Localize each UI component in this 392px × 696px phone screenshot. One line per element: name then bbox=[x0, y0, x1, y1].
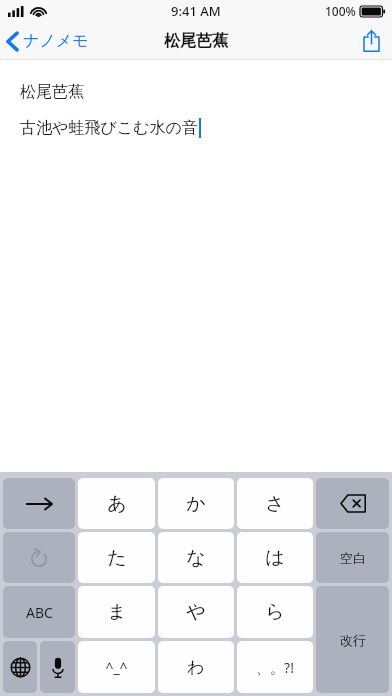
staticText: か bbox=[186, 492, 206, 516]
staticText: ら bbox=[265, 600, 285, 624]
button[interactable]: な bbox=[158, 532, 234, 583]
staticText: 松尾芭蕉 bbox=[164, 31, 228, 51]
staticText: ナノメモ bbox=[23, 31, 89, 51]
button[interactable]: 改行 bbox=[316, 586, 389, 693]
button[interactable]: わ bbox=[158, 641, 234, 693]
staticText: 9:41 AM bbox=[171, 2, 221, 20]
button[interactable]: ^_^ bbox=[78, 641, 155, 693]
button[interactable]: Dictation bbox=[40, 641, 75, 693]
staticText: 100% bbox=[325, 3, 356, 19]
button[interactable]: ら bbox=[237, 586, 313, 638]
button[interactable]: 松尾芭蕉 bbox=[0, 60, 392, 472]
staticText: や bbox=[186, 600, 206, 624]
button[interactable] bbox=[3, 478, 75, 529]
button[interactable]: Delete bbox=[316, 478, 389, 529]
button[interactable]: 空白 bbox=[316, 532, 389, 583]
staticText: 古池や蛙飛びこむ水の音 bbox=[20, 118, 198, 138]
button[interactable]: あ bbox=[78, 478, 155, 529]
button[interactable]: ナノメモ bbox=[0, 27, 99, 55]
button[interactable]: ま bbox=[78, 586, 155, 638]
staticText: 、。?! bbox=[256, 658, 294, 677]
staticText: な bbox=[186, 546, 206, 570]
button[interactable]: ABC bbox=[3, 586, 75, 638]
staticText: ま bbox=[107, 600, 127, 624]
staticText: ^_^ bbox=[105, 658, 128, 677]
button[interactable]: さ bbox=[237, 478, 313, 529]
button[interactable]: Undo bbox=[3, 532, 75, 583]
staticText: わ bbox=[187, 657, 205, 678]
staticText: ABC bbox=[26, 603, 53, 622]
button[interactable]: た bbox=[78, 532, 155, 583]
staticText: さ bbox=[265, 492, 285, 516]
staticText: 松尾芭蕉 bbox=[20, 82, 84, 102]
button[interactable]: Change keyboard bbox=[3, 641, 37, 693]
staticText: は bbox=[265, 546, 285, 570]
button[interactable]: 、。?! bbox=[237, 641, 313, 693]
staticText: た bbox=[107, 546, 127, 570]
button[interactable]: や bbox=[158, 586, 234, 638]
button[interactable]: Share bbox=[351, 25, 392, 57]
button[interactable]: か bbox=[158, 478, 234, 529]
staticText: 空白 bbox=[340, 550, 366, 566]
staticText: 改行 bbox=[340, 632, 366, 648]
staticText: あ bbox=[107, 492, 127, 516]
button[interactable]: は bbox=[237, 532, 313, 583]
